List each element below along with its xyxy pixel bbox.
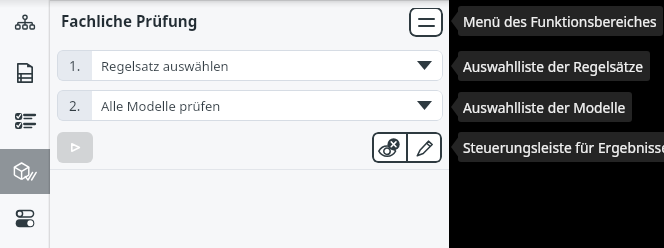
button[interactable]: Modellprüfung (0, 149, 50, 194)
staticText: Regelsatz auswählen (101, 57, 229, 75)
staticText: Alle Modelle prüfen (101, 97, 221, 115)
button[interactable]: Ergebnisse ausblenden (372, 132, 406, 163)
button[interactable]: Dokumente (0, 54, 50, 92)
button[interactable]: Prüfung starten (57, 132, 93, 163)
button[interactable]: Bearbeiten (408, 132, 442, 163)
button[interactable]: Einstellungen (0, 199, 50, 237)
staticText: Menü des Funktionsbereiches (463, 12, 657, 31)
staticText: Steuerungsleiste für Ergebnisse (463, 138, 664, 157)
staticText: Fachliche Prüfung (61, 11, 198, 32)
button[interactable]: Prüflisten (0, 102, 50, 140)
staticText: 2. (69, 97, 81, 115)
button[interactable]: Struktur (0, 3, 50, 41)
staticText: 1. (69, 57, 81, 75)
button[interactable]: 2. (57, 90, 443, 121)
button[interactable]: 1. (57, 50, 443, 81)
staticText: Auswahlliste der Modelle (463, 98, 626, 117)
button[interactable]: Menü des Funktionsbereiches (409, 7, 443, 37)
staticText: Auswahlliste der Regelsätze (463, 57, 644, 76)
